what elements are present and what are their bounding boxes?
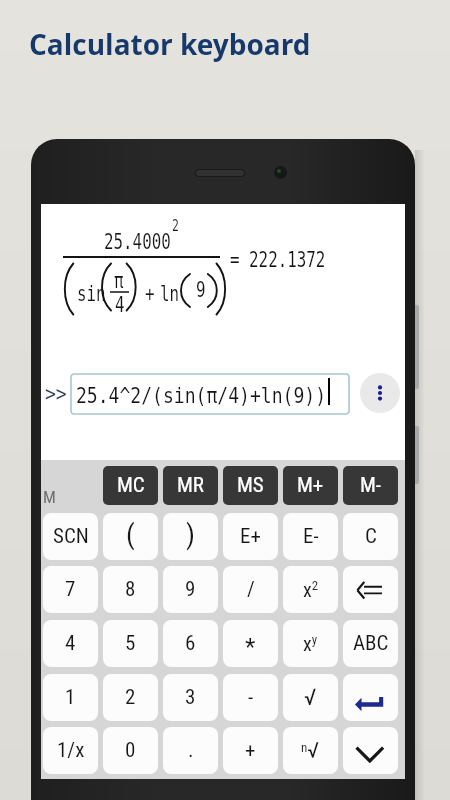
staticText: 8 [125, 577, 136, 602]
staticText: 25.4^2/(sin(π/4)+ln(9)) [76, 384, 326, 408]
button[interactable]: 7 [43, 566, 98, 613]
staticText: MC [117, 473, 145, 498]
staticText: M [43, 487, 56, 507]
button[interactable]: - [223, 674, 278, 721]
staticText: M- [360, 473, 382, 498]
button[interactable]: 2 [103, 674, 158, 721]
button[interactable]: 0 [103, 727, 158, 774]
button[interactable]: 1 [43, 674, 98, 721]
button[interactable]: MS [223, 466, 278, 505]
staticText: 4 [65, 631, 76, 656]
staticText: SCN [53, 524, 89, 549]
staticText: 1/x [57, 738, 85, 763]
staticText: / [247, 577, 255, 602]
staticText: MR [177, 473, 205, 498]
staticText: 25.4000 [104, 229, 171, 255]
button[interactable]: . [163, 727, 218, 774]
staticText: 9 [185, 577, 196, 602]
staticText: + [145, 281, 155, 307]
staticText: xy [303, 632, 318, 656]
button[interactable]: E- [283, 513, 338, 560]
button[interactable]: x2 [283, 566, 338, 613]
button[interactable]: MC [103, 466, 158, 505]
staticText: 3 [185, 685, 196, 710]
staticText: 4 [115, 292, 125, 318]
staticText: ) [186, 518, 195, 551]
button[interactable]: n√ [283, 727, 338, 774]
button[interactable]: M+ [283, 466, 338, 505]
staticText: >> [45, 382, 67, 406]
staticText: 2 [172, 216, 179, 235]
button[interactable]: 3 [163, 674, 218, 721]
button[interactable]: ABC [343, 620, 398, 667]
button[interactable]: √ [283, 674, 338, 721]
button[interactable] [71, 374, 349, 414]
button[interactable]: 5 [103, 620, 158, 667]
staticText: = 222.1372 [230, 247, 326, 273]
button[interactable]: / [223, 566, 278, 613]
button[interactable]: + [223, 727, 278, 774]
button[interactable]: 6 [163, 620, 218, 667]
staticText: Calculator keyboard [29, 25, 311, 63]
button[interactable]: C [343, 513, 398, 560]
staticText: ln [160, 281, 179, 307]
button[interactable] [343, 674, 398, 721]
staticText: . [188, 738, 194, 763]
button[interactable]: 1/x [43, 727, 98, 774]
staticText: n√ [301, 738, 320, 764]
staticText: 7 [65, 577, 76, 602]
button[interactable]: 8 [103, 566, 158, 613]
staticText: 9 [196, 277, 206, 303]
button[interactable]: 4 [43, 620, 98, 667]
staticText: M+ [297, 473, 324, 498]
staticText: * [245, 633, 256, 661]
button[interactable] [343, 566, 398, 613]
button[interactable]: SCN [43, 513, 98, 560]
staticText: E- [303, 524, 319, 549]
staticText: 5 [125, 631, 136, 656]
staticText: ABC [353, 631, 389, 656]
button[interactable]: ( [103, 513, 158, 560]
staticText: MS [237, 473, 264, 498]
staticText: √ [304, 684, 317, 711]
staticText: ( [126, 518, 135, 551]
staticText: sin [77, 281, 106, 307]
staticText: E+ [240, 524, 261, 549]
staticText: + [245, 738, 256, 763]
staticText: - [248, 685, 254, 710]
staticText: x2 [303, 578, 319, 602]
staticText: 0 [125, 738, 136, 763]
staticText: 1 [65, 685, 76, 710]
button[interactable]: MR [163, 466, 218, 505]
button[interactable]: M- [343, 466, 398, 505]
button[interactable]: E+ [223, 513, 278, 560]
staticText: π [114, 268, 124, 294]
staticText: C [365, 524, 377, 549]
button[interactable]: ) [163, 513, 218, 560]
button[interactable]: xy [283, 620, 338, 667]
button[interactable] [343, 727, 398, 774]
button[interactable] [360, 373, 400, 413]
button[interactable]: 9 [163, 566, 218, 613]
staticText: 6 [185, 631, 196, 656]
button[interactable]: * [223, 620, 278, 667]
staticText: 2 [125, 685, 136, 710]
